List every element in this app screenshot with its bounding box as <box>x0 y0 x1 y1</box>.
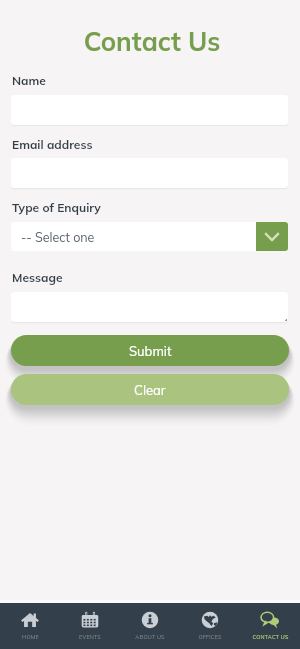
button[interactable]: Clear <box>11 374 289 405</box>
staticText: Type of Enquiry <box>12 200 101 215</box>
button[interactable]: EVENTS <box>60 603 120 641</box>
button[interactable]: ABOUT US <box>120 603 180 641</box>
staticText: Submit <box>129 343 172 359</box>
staticText: -- Select one <box>21 229 95 245</box>
staticText: Name <box>12 73 46 88</box>
staticText: Message <box>12 270 63 285</box>
button[interactable]: CONTACT US <box>240 603 300 641</box>
staticText: ABOUT US <box>135 634 165 641</box>
staticText: OFFICES <box>198 634 222 641</box>
button[interactable]: Submit <box>11 335 289 366</box>
staticText: HOME <box>22 634 39 641</box>
staticText: Email address <box>12 137 93 152</box>
staticText: Contact Us <box>2 25 300 58</box>
button[interactable]: HOME <box>0 603 60 641</box>
staticText: CONTACT US <box>252 634 289 641</box>
button[interactable]: -- Select one <box>11 222 288 251</box>
other: Open enquiry type list <box>256 222 288 251</box>
button[interactable]: OFFICES <box>180 603 240 641</box>
staticText: EVENTS <box>79 634 101 641</box>
staticText: Clear <box>134 382 166 398</box>
